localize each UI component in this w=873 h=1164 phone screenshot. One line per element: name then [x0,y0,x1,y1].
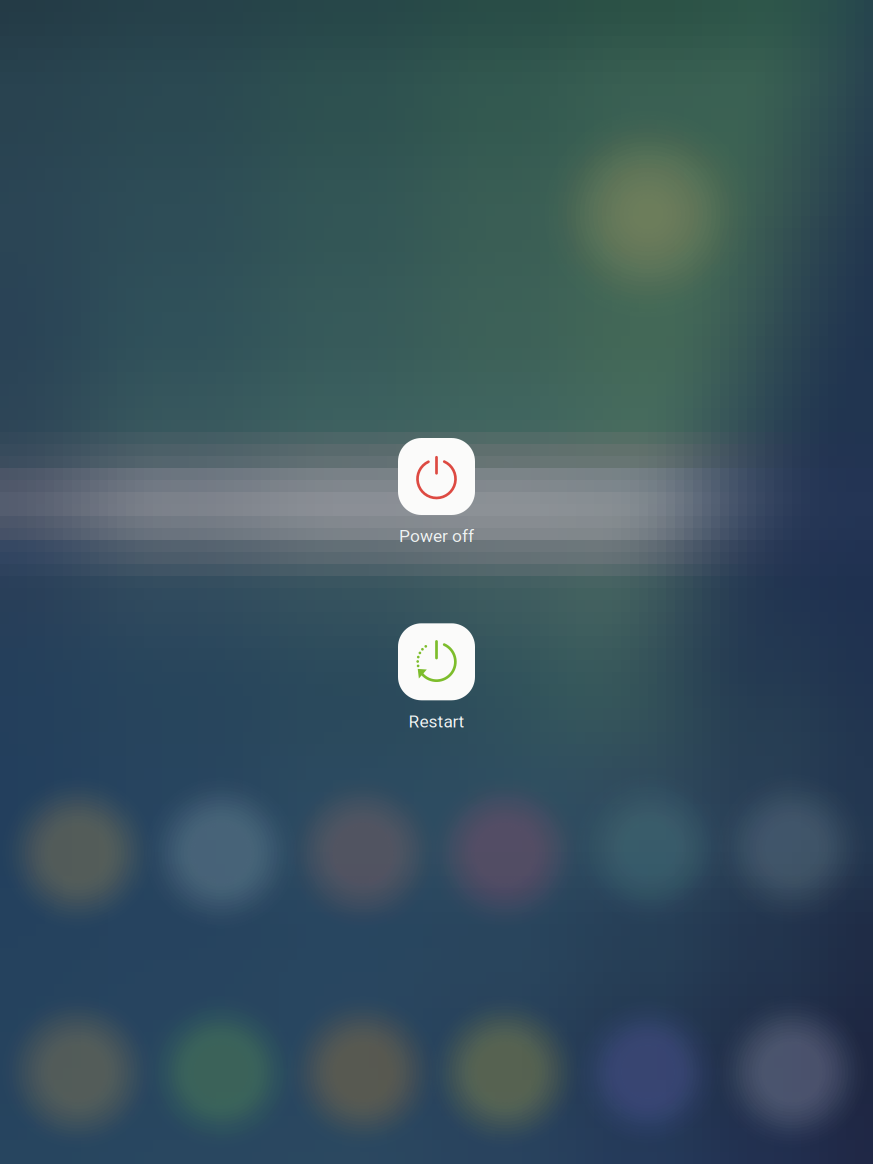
button[interactable]: Power off [336,430,536,556]
staticText: Power off [399,526,474,546]
button[interactable]: Restart [336,615,536,742]
staticText: Restart [408,711,464,732]
